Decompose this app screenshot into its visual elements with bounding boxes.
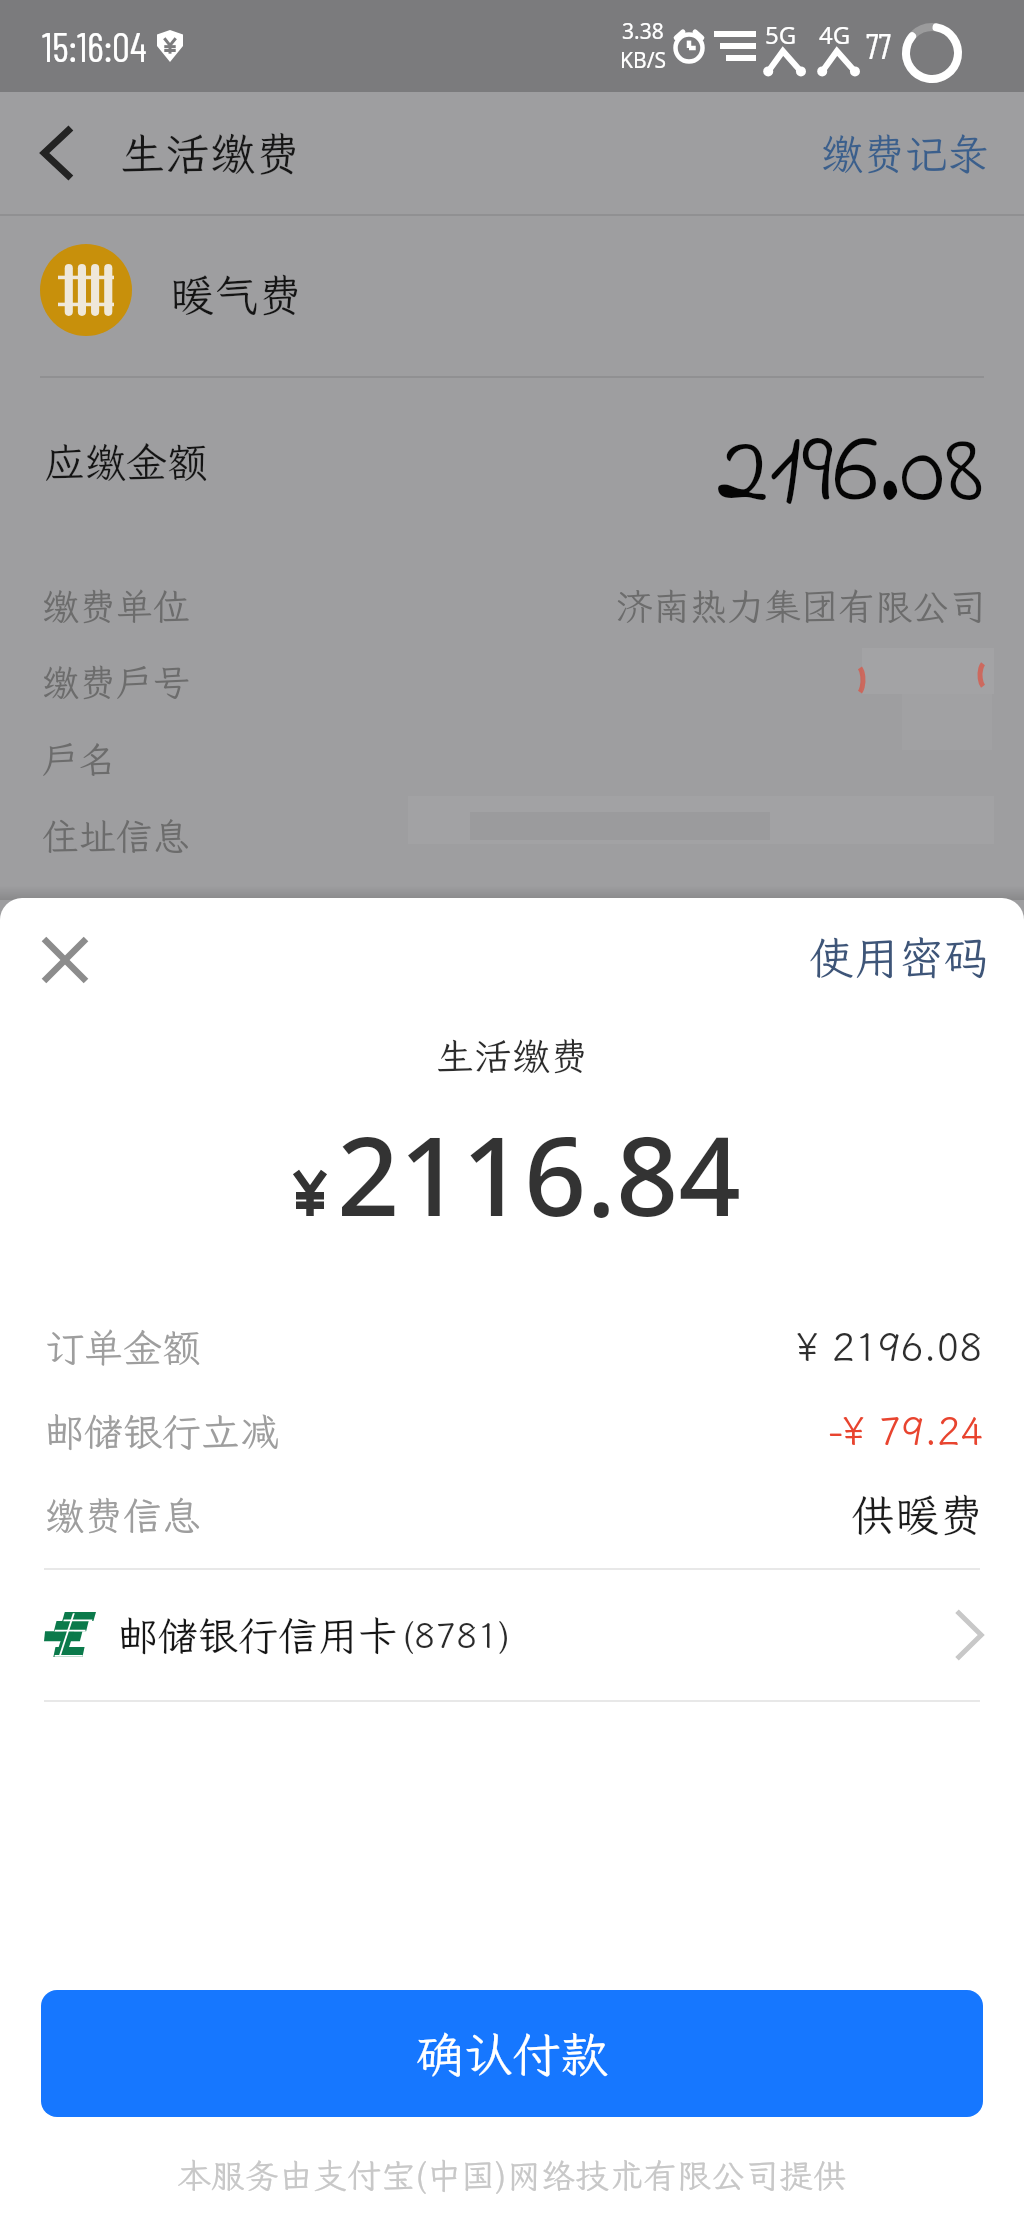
staticText: -¥ 79.24 bbox=[829, 1406, 983, 1456]
other: Change payment method bbox=[956, 1611, 984, 1659]
staticText: 2116.84 bbox=[337, 1099, 741, 1247]
staticText: 使用密码 bbox=[809, 928, 990, 987]
staticText: 15:16:04 bbox=[42, 22, 147, 70]
staticText: 缴费单位 bbox=[42, 582, 190, 631]
staticText: (8781) bbox=[402, 1612, 511, 1658]
staticText: 2196.08 bbox=[717, 399, 984, 551]
staticText: 济南热力集团有限公司 bbox=[616, 582, 986, 631]
staticText: 缴费户号 bbox=[42, 658, 190, 707]
staticText: 77 bbox=[866, 25, 891, 66]
staticText: 户名 bbox=[42, 735, 116, 784]
staticText: 生活缴费 bbox=[120, 124, 301, 183]
button[interactable]: 使用密码 bbox=[779, 898, 1024, 1011]
button[interactable]: 确认付款 bbox=[41, 1990, 983, 2117]
button[interactable]: Close bbox=[20, 915, 110, 1005]
staticText: 确认付款 bbox=[416, 2022, 609, 2085]
staticText: 缴费记录 bbox=[821, 126, 990, 181]
staticText: KB/S bbox=[620, 46, 666, 75]
staticText: 3.38 bbox=[622, 17, 664, 46]
staticText: 订单金额 bbox=[45, 1322, 202, 1373]
staticText: 应缴金额 bbox=[44, 435, 208, 489]
staticText: 4G bbox=[819, 18, 851, 51]
staticText: 缴费信息 bbox=[45, 1490, 202, 1541]
staticText: 邮储银行信用卡 bbox=[118, 1609, 398, 1662]
staticText: 5G bbox=[765, 18, 797, 51]
button[interactable]: Back bbox=[0, 92, 112, 214]
button[interactable]: 邮储银行信用卡 bbox=[0, 1570, 1024, 1700]
staticText: 供暖费 bbox=[851, 1486, 983, 1544]
staticText: ¥ 2196.08 bbox=[796, 1322, 983, 1372]
staticText: 生活缴费 bbox=[0, 1031, 1024, 1081]
staticText: 邮储银行立减 bbox=[45, 1406, 280, 1457]
staticText: 本服务由支付宝(中国)网络技术有限公司提供 bbox=[0, 2153, 1024, 2198]
staticText: 住址信息 bbox=[42, 812, 190, 861]
button[interactable]: 暖气费 bbox=[0, 216, 1024, 378]
button[interactable]: 缴费记录 bbox=[785, 92, 1024, 214]
staticText: 暖气费 bbox=[170, 266, 302, 324]
